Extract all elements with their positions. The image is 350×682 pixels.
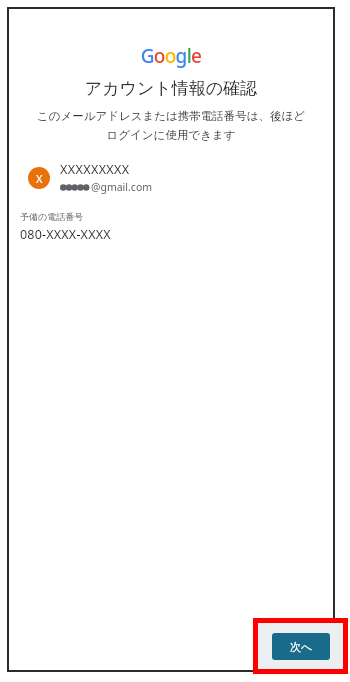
button[interactable]: 予備の電話番号 — [7, 211, 335, 243]
staticText: 080-XXXX-XXXX — [20, 226, 111, 243]
staticText: XXXXXXXXX — [60, 161, 130, 178]
button[interactable]: X — [7, 161, 335, 194]
staticText: 次へ — [290, 640, 313, 654]
button[interactable]: 次へ — [272, 633, 330, 660]
staticText: X — [36, 171, 43, 186]
staticText: @gmail.com — [91, 180, 153, 194]
staticText: このメールアドレスまたは携帯電話番号は、後ほど ログインに使用できます — [17, 109, 325, 143]
staticText: 予備の電話番号 — [20, 211, 84, 222]
staticText: Google — [7, 43, 335, 69]
staticText: アカウント情報の確認 — [7, 78, 335, 99]
